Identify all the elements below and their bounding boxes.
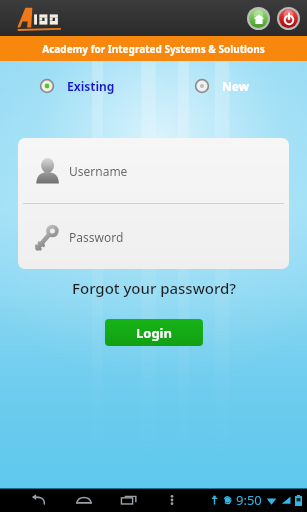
button[interactable]: Login	[105, 319, 203, 346]
staticText: Existing	[67, 78, 115, 94]
staticText: New	[222, 78, 249, 94]
button[interactable]: Back	[30, 491, 48, 509]
button[interactable]: Power off	[277, 7, 300, 30]
button[interactable]: Forgot your password?	[0, 278, 307, 298]
button[interactable]: New	[193, 75, 251, 97]
staticText: Username	[69, 163, 128, 179]
staticText: Login	[136, 324, 172, 342]
button[interactable]: More options	[165, 493, 179, 507]
button[interactable]: Password	[18, 204, 289, 269]
button[interactable]: Home	[75, 491, 93, 509]
button[interactable]: Recent apps	[120, 491, 138, 509]
staticText: Academy for Integrated Systems & Solutio…	[42, 42, 265, 56]
button[interactable]: Home	[247, 7, 270, 30]
staticText: 9:50	[236, 491, 262, 509]
button[interactable]: AISS logo	[8, 3, 66, 33]
button[interactable]: Existing	[38, 75, 117, 97]
staticText: Forgot your password?	[72, 278, 236, 298]
staticText: Password	[69, 229, 124, 245]
button[interactable]: Username	[18, 138, 289, 203]
